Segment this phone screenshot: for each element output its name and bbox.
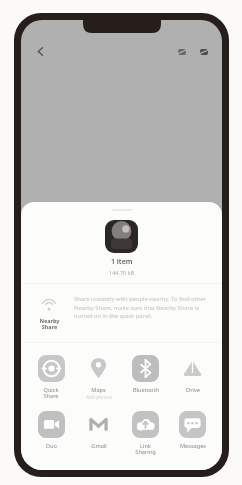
staticText: Duo [46, 442, 57, 450]
button[interactable]: Maps [75, 354, 122, 402]
button[interactable]: Shared image preview [105, 220, 138, 253]
button[interactable]: Bluetooth [122, 354, 169, 395]
staticText: Quick Share [43, 386, 59, 400]
staticText: Maps [91, 386, 106, 394]
staticText: Add photos [86, 394, 112, 401]
button[interactable]: Messages [169, 410, 216, 451]
button[interactable]: Gmail [75, 410, 122, 451]
staticText: Link Sharing [135, 442, 156, 456]
staticText: Gmail [91, 442, 107, 450]
staticText: 1 item [111, 257, 133, 267]
button[interactable]: Duo [27, 410, 75, 451]
button[interactable]: Back [30, 41, 50, 61]
button[interactable]: Link Sharing [122, 410, 169, 457]
staticText: Share instantly with people nearby. To f… [74, 295, 207, 319]
staticText: Nearby Share [39, 317, 60, 331]
button[interactable]: Drive [169, 354, 216, 395]
staticText: Messages [180, 442, 206, 450]
button[interactable]: Nearby Share [33, 295, 207, 331]
staticText: Bluetooth [133, 386, 159, 394]
staticText: 144.70 kB [109, 269, 135, 276]
button[interactable]: Quick Share [27, 354, 75, 401]
button[interactable]: Edit [173, 43, 190, 60]
staticText: Drive [186, 386, 200, 394]
button[interactable]: More options [195, 43, 212, 60]
